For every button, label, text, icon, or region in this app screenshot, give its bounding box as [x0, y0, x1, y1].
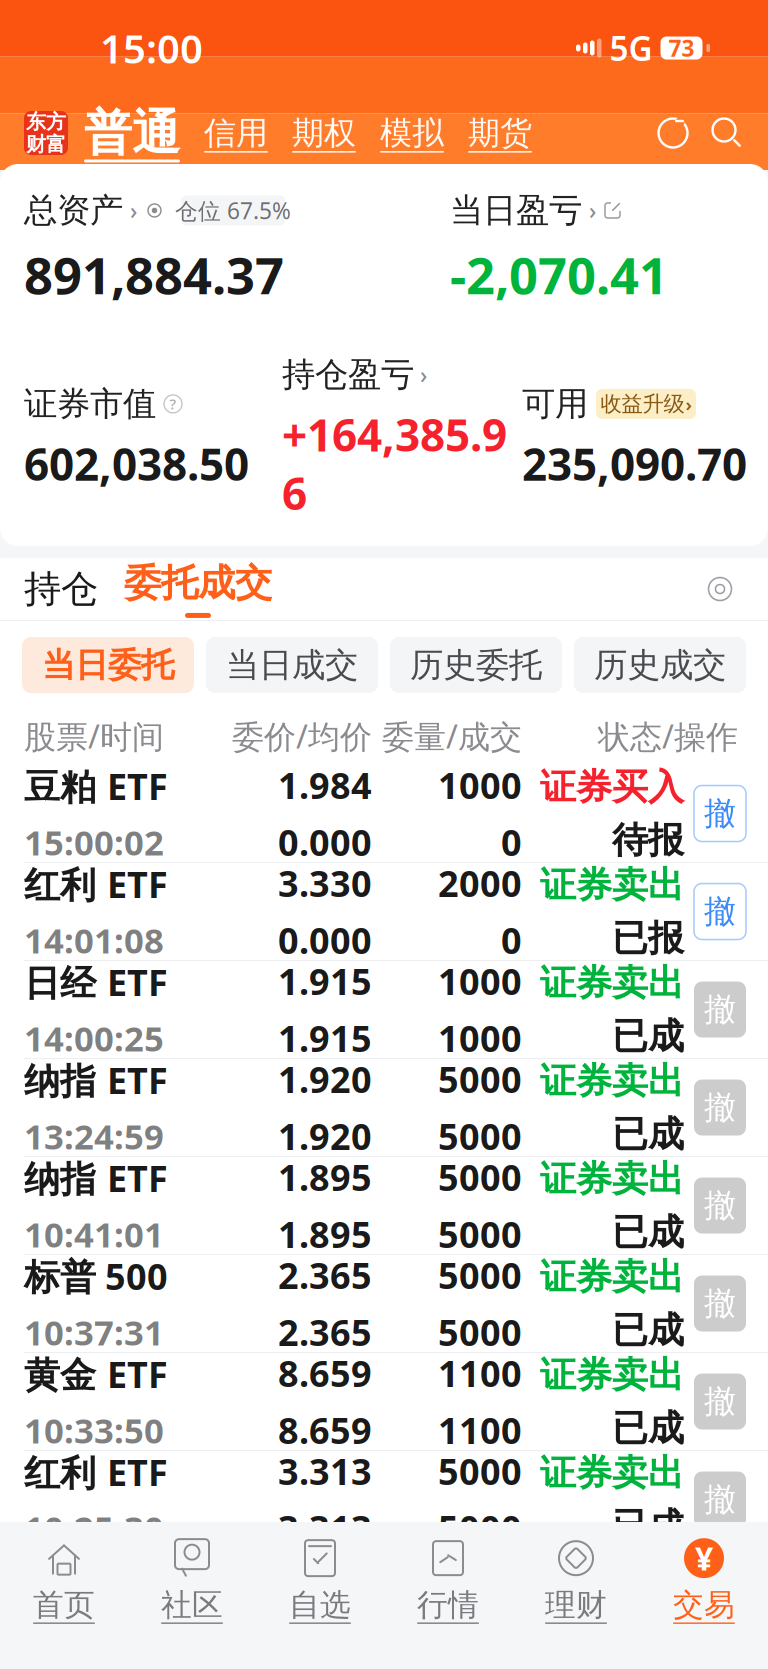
- staticText: 证券卖出: [540, 1451, 684, 1495]
- button[interactable]: 历史委托: [390, 637, 562, 693]
- staticText: 持仓盈亏: [282, 354, 414, 395]
- button[interactable]: 收益升级: [596, 389, 696, 419]
- staticText: 已成: [612, 1112, 684, 1156]
- button[interactable]: 期权: [268, 113, 356, 153]
- button[interactable]: 持仓: [0, 566, 98, 612]
- button[interactable]: 撤单 可撤: [694, 883, 746, 939]
- staticText: 撤: [704, 1480, 736, 1519]
- staticText: 证券卖出: [540, 1059, 684, 1103]
- staticText: 10:33:50: [24, 1407, 164, 1453]
- staticText: 理财: [545, 1586, 607, 1624]
- button[interactable]: 撤单 不可撤: [694, 1569, 746, 1625]
- staticText: 1000: [438, 957, 522, 1005]
- button[interactable]: 自选: [256, 1524, 384, 1624]
- staticText: 证券市值: [24, 383, 156, 424]
- staticText: 历史成交: [594, 645, 726, 685]
- staticText: 5000: [438, 1308, 522, 1356]
- button[interactable]: 委托成交: [98, 560, 272, 618]
- staticText: 1100: [438, 1349, 522, 1397]
- staticText: 委托成交: [124, 560, 272, 606]
- staticText: 1100: [438, 1406, 522, 1454]
- staticText: 2.365: [278, 1308, 372, 1356]
- staticText: 状态/操作: [598, 715, 738, 757]
- button[interactable]: ¥: [640, 1524, 768, 1624]
- staticText: 15:00:02: [24, 819, 164, 865]
- button[interactable]: 期货: [444, 113, 532, 153]
- staticText: 235,090.70: [522, 434, 747, 493]
- staticText: 可用: [522, 383, 588, 424]
- staticText: 财富: [26, 132, 66, 157]
- staticText: 待报: [612, 818, 684, 862]
- button[interactable]: 刷新: [656, 116, 690, 150]
- staticText: 0.000: [278, 916, 372, 964]
- button[interactable]: 撤单 不可撤: [694, 1177, 746, 1233]
- staticText: 已成: [612, 1210, 684, 1254]
- staticText: 5000: [438, 1210, 522, 1258]
- button[interactable]: 豆粕 ETF: [0, 765, 768, 863]
- staticText: 2000: [438, 859, 522, 907]
- staticText: 8.659: [278, 1349, 372, 1397]
- staticText: 5000: [438, 1153, 522, 1201]
- button[interactable]: 行情: [384, 1524, 512, 1624]
- staticText: 证券卖出: [540, 1255, 684, 1299]
- button[interactable]: 撤单 可撤: [694, 785, 746, 841]
- button[interactable]: 搜索: [710, 116, 744, 150]
- button[interactable]: 当日成交: [206, 637, 378, 693]
- button[interactable]: 红利 ETF: [0, 1451, 768, 1549]
- button[interactable]: 理财: [512, 1524, 640, 1624]
- staticText: 0.000: [278, 818, 372, 866]
- staticText: 10:25:30: [24, 1505, 164, 1551]
- staticText: 历史委托: [410, 645, 542, 685]
- staticText: 黄金 ETF: [24, 1350, 168, 1398]
- button[interactable]: 标普 500: [0, 1255, 768, 1353]
- staticText: 信用: [204, 113, 268, 153]
- button[interactable]: 纳指 ETF: [0, 1059, 768, 1157]
- staticText: 首页: [33, 1586, 95, 1624]
- button[interactable]: 纳指 ETF: [0, 1549, 768, 1647]
- staticText: 0: [501, 818, 522, 866]
- staticText: 行情: [417, 1586, 479, 1624]
- staticText: 1.895: [278, 1153, 372, 1201]
- button[interactable]: 撤单 不可撤: [694, 1079, 746, 1135]
- button[interactable]: 撤单 不可撤: [694, 1373, 746, 1429]
- staticText: 8.659: [278, 1406, 372, 1454]
- staticText: 1000: [438, 1014, 522, 1062]
- staticText: 1.915: [278, 957, 372, 1005]
- button[interactable]: 首页: [0, 1524, 128, 1624]
- staticText: 证券卖出: [540, 961, 684, 1005]
- staticText: 1.920: [278, 1112, 372, 1160]
- button[interactable]: 撤单 不可撤: [694, 981, 746, 1037]
- staticText: 红利 ETF: [24, 1448, 168, 1496]
- button[interactable]: 当日委托: [22, 637, 194, 693]
- staticText: 社区: [161, 1586, 223, 1624]
- button[interactable]: 撤单 不可撤: [694, 1275, 746, 1331]
- staticText: 已成: [612, 1014, 684, 1058]
- staticText: 10:19:02: [24, 1603, 164, 1649]
- button[interactable]: 普通: [68, 103, 180, 162]
- staticText: 委量/成交: [382, 715, 522, 757]
- button[interactable]: 信用: [180, 113, 268, 153]
- staticText: 5000: [438, 1447, 522, 1495]
- staticText: 豆粕 ETF: [24, 762, 168, 810]
- button[interactable]: 设置: [706, 575, 734, 603]
- staticText: 证券买入: [540, 765, 684, 809]
- button[interactable]: 撤单 不可撤: [694, 1471, 746, 1527]
- staticText: 当日委托: [42, 645, 174, 685]
- button[interactable]: 历史成交: [574, 637, 746, 693]
- staticText: 5000: [438, 1112, 522, 1160]
- staticText: 5G: [609, 26, 652, 70]
- staticText: 撤: [704, 794, 736, 833]
- staticText: 5000: [438, 1251, 522, 1299]
- button[interactable]: 红利 ETF: [0, 863, 768, 961]
- staticText: 日经 ETF: [24, 958, 168, 1006]
- staticText: ›: [130, 195, 137, 225]
- staticText: 15:00: [100, 21, 203, 74]
- staticText: +164,385.96: [282, 405, 507, 522]
- staticText: 证券卖出: [540, 1549, 684, 1593]
- button[interactable]: 社区: [128, 1524, 256, 1624]
- button[interactable]: 模拟: [356, 113, 444, 153]
- button[interactable]: 日经 ETF: [0, 961, 768, 1059]
- button[interactable]: 分享当日盈亏: [603, 201, 622, 220]
- button[interactable]: 黄金 ETF: [0, 1353, 768, 1451]
- button[interactable]: 纳指 ETF: [0, 1157, 768, 1255]
